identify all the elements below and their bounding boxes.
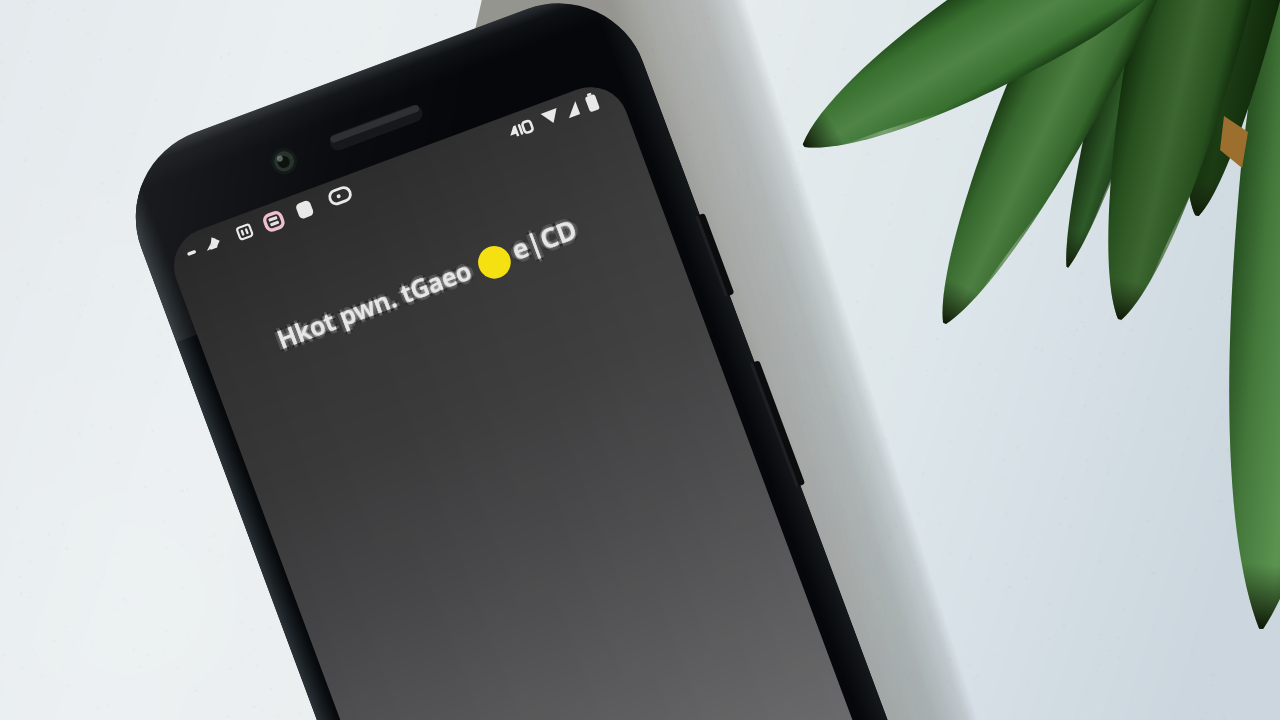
button[interactable]: Android phone on a desk next to a plant bbox=[0, 0, 1280, 720]
